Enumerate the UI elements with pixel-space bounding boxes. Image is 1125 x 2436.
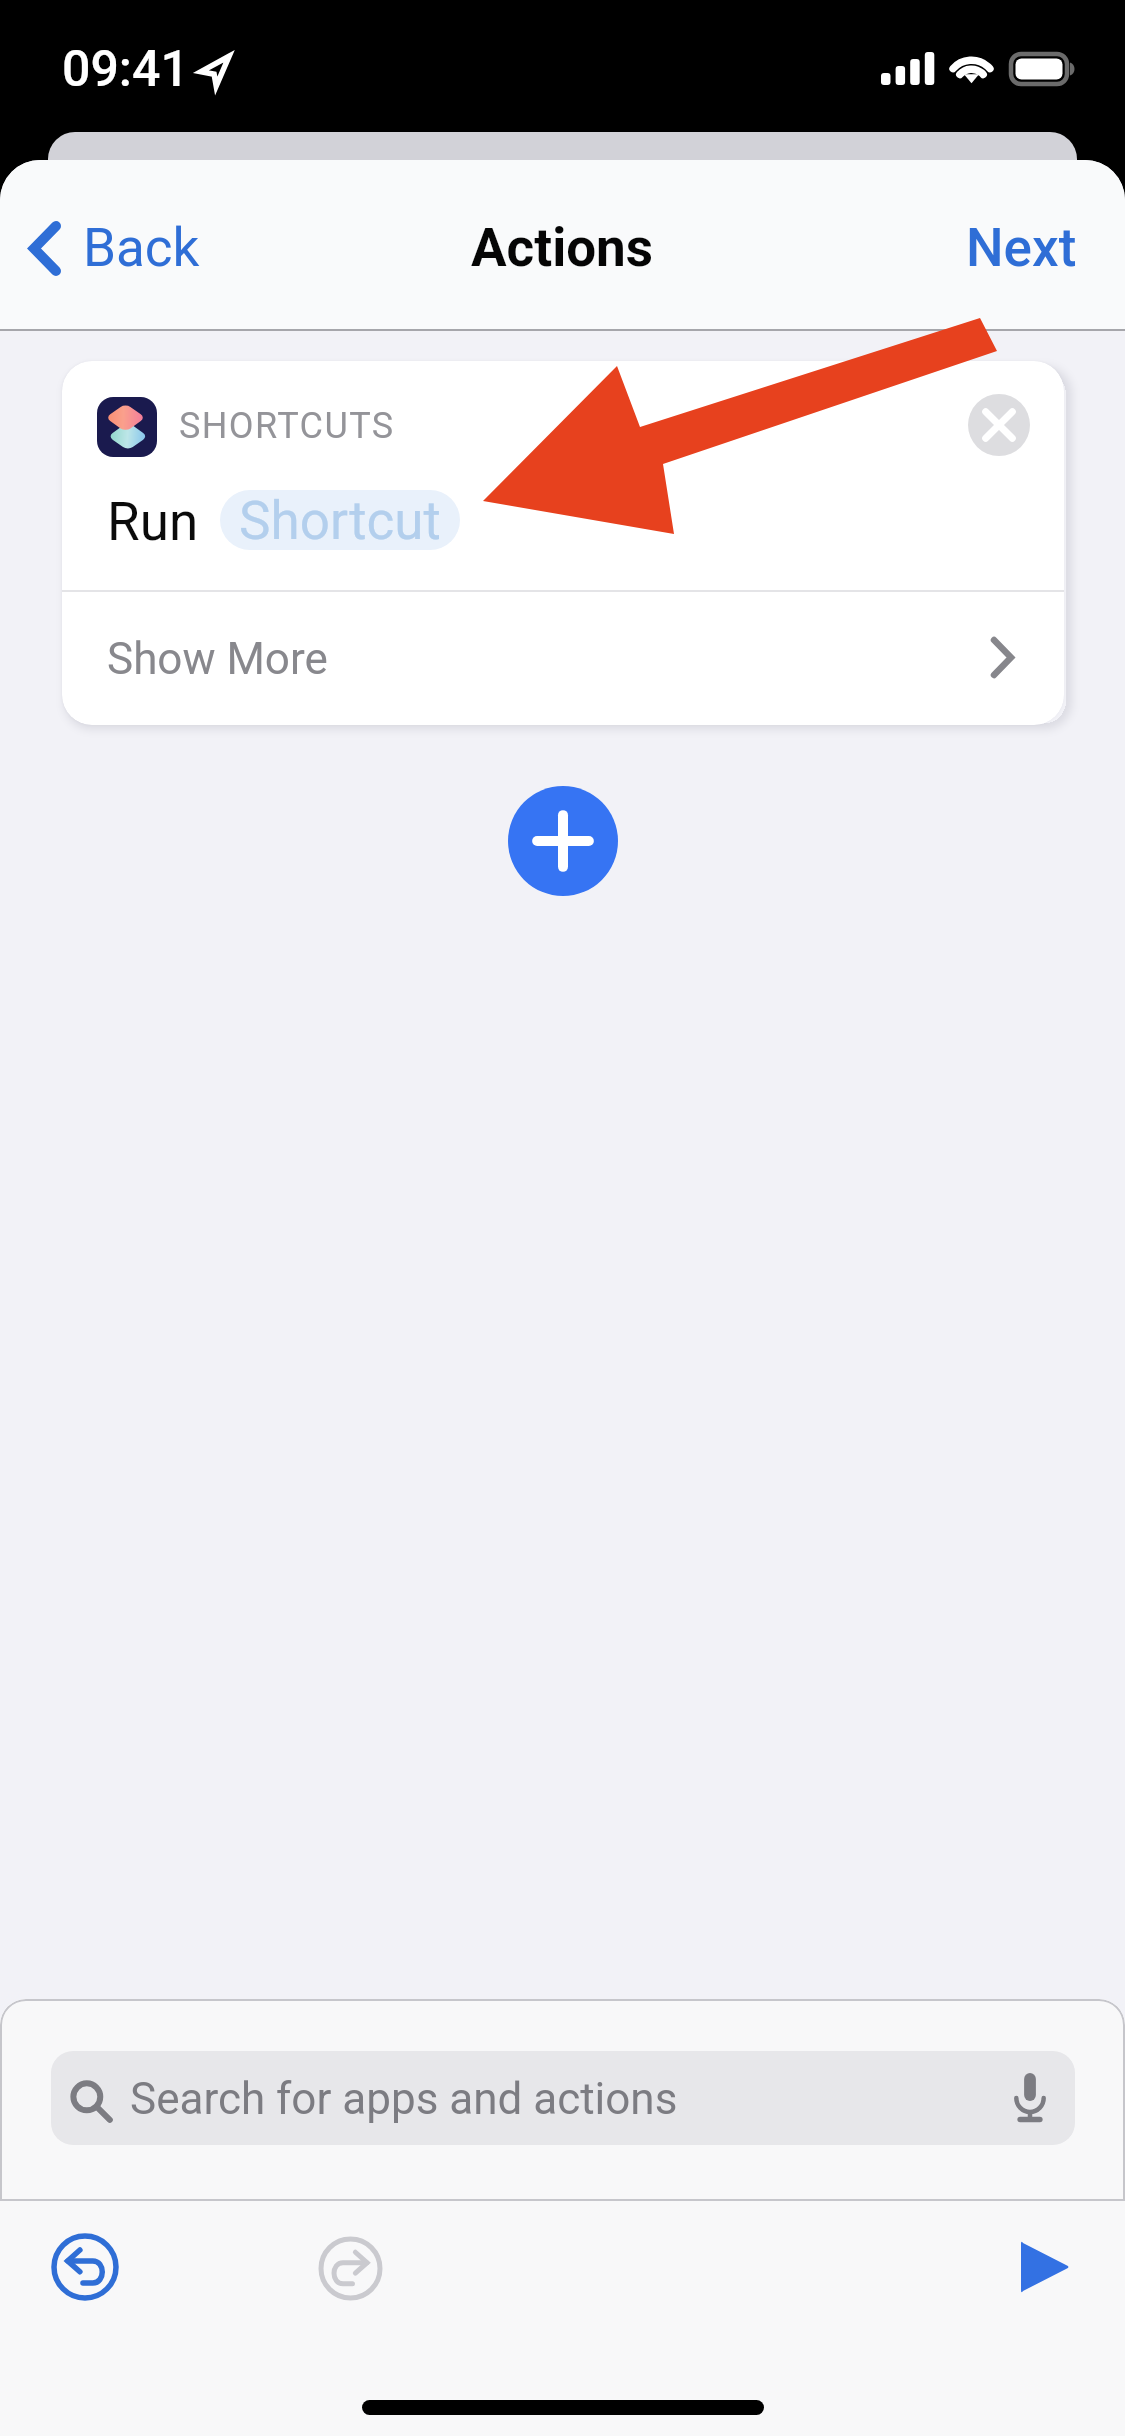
staticText: SHORTCUTS — [179, 405, 395, 447]
staticText: Show More — [107, 633, 328, 685]
button[interactable]: Back — [10, 203, 220, 293]
button[interactable]: Redo — [318, 2236, 383, 2301]
staticText: Search for apps and actions — [130, 2073, 678, 2125]
staticText: 09:41 — [62, 40, 189, 99]
staticText: Actions — [471, 217, 654, 279]
staticText: Back — [83, 217, 200, 279]
button[interactable]: Remove action — [968, 394, 1030, 456]
button[interactable]: Undo — [51, 2233, 119, 2301]
button[interactable]: Show More — [62, 592, 1064, 725]
staticText: Run — [107, 491, 199, 553]
button[interactable]: Run shortcut — [1021, 2239, 1070, 2295]
button[interactable]: Add action — [508, 786, 618, 896]
button[interactable]: Shortcut — [220, 490, 460, 550]
staticText: Next — [966, 217, 1077, 279]
staticText: Shortcut — [239, 490, 441, 550]
button[interactable]: Next — [942, 203, 1101, 293]
button[interactable]: Search for apps and actions — [51, 2051, 1075, 2145]
